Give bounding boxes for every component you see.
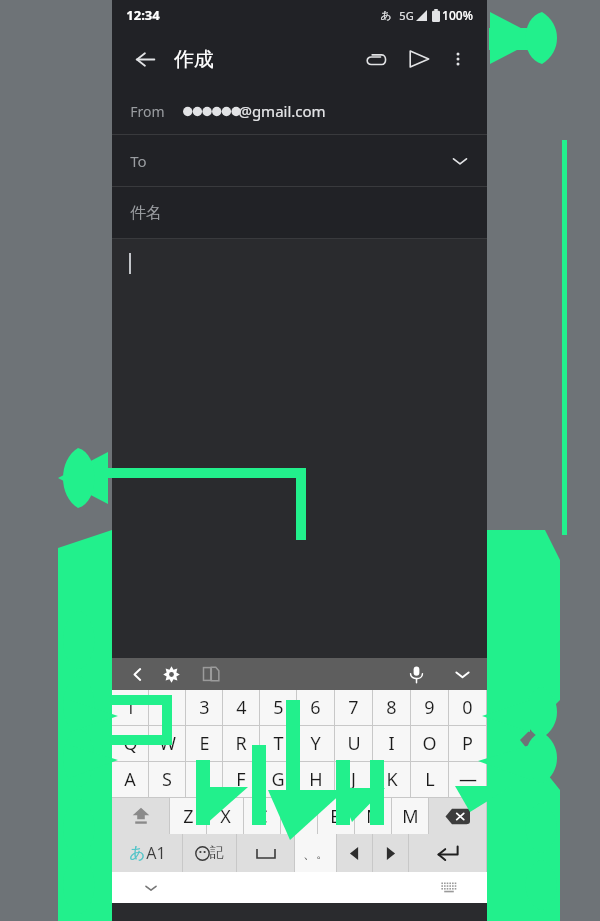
button[interactable]: Send [399,39,439,79]
button[interactable]: 5 [260,690,296,725]
button[interactable]: X [207,798,243,834]
staticText: Y [310,731,321,756]
button[interactable]: Enter [409,834,486,872]
button[interactable]: Y [297,726,334,761]
staticText: From [130,102,165,121]
staticText: N [366,804,380,829]
staticText: L [425,767,435,792]
staticText: 6 [310,695,321,720]
staticText: E [199,731,210,756]
button[interactable]: K [373,762,410,797]
button[interactable]: W [149,726,185,761]
button[interactable]: Previous [124,661,150,687]
staticText: X [220,804,231,829]
staticText: F [236,767,246,792]
staticText: あ [129,843,146,863]
button[interactable]: Clipboard [198,661,224,687]
button[interactable]: From [112,88,487,134]
button[interactable]: O [411,726,448,761]
button[interactable]: Z [170,798,206,834]
button[interactable]: 8 [373,690,410,725]
button[interactable]: 4 [223,690,259,725]
staticText: 1 [125,695,136,720]
button[interactable]: — [449,762,486,797]
button[interactable]: D [186,762,222,797]
button[interactable]: Attach file [355,39,395,79]
button[interactable] [112,239,487,658]
button[interactable]: Shift [112,798,169,834]
staticText: 8 [386,695,397,720]
button[interactable]: 記 [183,834,236,872]
button[interactable]: Voice input [403,661,429,687]
button[interactable]: Back [124,39,164,79]
staticText: O [422,731,437,756]
button[interactable]: Q [112,726,148,761]
staticText: 記 [210,844,224,862]
button[interactable]: 2 [149,690,185,725]
button[interactable]: V [281,798,317,834]
button[interactable]: 6 [297,690,334,725]
staticText: 5G [399,8,414,23]
staticText: 2 [162,695,173,720]
staticText: K [386,767,398,792]
button[interactable]: Settings [158,661,184,687]
button[interactable]: S [149,762,185,797]
button[interactable]: M [392,798,428,834]
staticText: I [388,731,395,756]
button[interactable]: J [335,762,372,797]
button[interactable]: P [449,726,486,761]
button[interactable]: 7 [335,690,372,725]
button[interactable]: N [355,798,391,834]
staticText: A1 [146,842,166,864]
staticText: 3 [199,695,210,720]
button[interactable]: 0 [449,690,486,725]
staticText: T [273,731,284,756]
button[interactable]: Back [112,872,189,903]
staticText: To [130,151,147,171]
button[interactable]: F [223,762,259,797]
button[interactable]: T [260,726,296,761]
staticText: 作成 [174,47,214,72]
staticText: J [351,767,356,792]
button[interactable]: L [411,762,448,797]
button[interactable]: E [186,726,222,761]
staticText: 5 [273,695,284,720]
button[interactable]: H [297,762,334,797]
button[interactable]: A [112,762,148,797]
button[interactable]: I [373,726,410,761]
button[interactable]: Switch keyboard [416,872,481,903]
staticText: 4 [236,695,247,720]
button[interactable]: To [112,135,487,186]
staticText: G [271,767,285,792]
button[interactable]: Backspace [429,798,486,834]
button[interactable]: Space [237,834,294,872]
staticText: 0 [462,695,473,720]
staticText: W [159,731,176,756]
staticText: 7 [348,695,359,720]
staticText: 件名 [130,203,162,223]
button[interactable]: More options [441,42,475,76]
button[interactable]: あ [112,834,182,872]
button[interactable]: 、。 [295,834,336,872]
staticText: C [256,804,268,829]
staticText: P [462,731,473,756]
staticText: H [309,767,323,792]
button[interactable]: U [335,726,372,761]
staticText: 12:34 [126,6,160,24]
button[interactable]: B [318,798,354,834]
button[interactable]: 3 [186,690,222,725]
button[interactable]: 9 [411,690,448,725]
staticText: — [459,767,477,792]
button[interactable]: R [223,726,259,761]
staticText: 9 [424,695,435,720]
staticText: D [197,767,211,792]
staticText: Q [123,731,138,756]
button[interactable]: Cursor right [373,834,408,872]
button[interactable]: 1 [112,690,148,725]
button[interactable]: 件名 [112,187,487,238]
button[interactable]: G [260,762,296,797]
button[interactable]: Cursor left [337,834,372,872]
button[interactable]: C [244,798,280,834]
staticText: 、。 [303,845,329,861]
button[interactable]: Hide keyboard [449,661,475,687]
